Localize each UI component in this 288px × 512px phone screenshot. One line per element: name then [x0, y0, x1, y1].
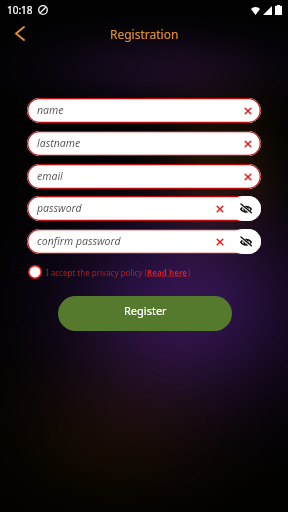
- button[interactable]: name: [27, 98, 261, 123]
- button[interactable]: Toggle password visibility: [230, 196, 261, 221]
- button[interactable]: lastname: [27, 131, 261, 156]
- button[interactable]: confirm password: [27, 229, 261, 254]
- button[interactable]: Clear confirm password: [215, 237, 225, 247]
- button[interactable]: password: [27, 196, 261, 221]
- staticText: password: [37, 201, 82, 215]
- button[interactable]: Clear password: [215, 204, 225, 214]
- staticText: confirm password: [37, 234, 121, 248]
- button[interactable]: Accept privacy policy: [28, 265, 42, 279]
- staticText: email: [37, 169, 63, 183]
- button[interactable]: Toggle password visibility: [230, 229, 261, 254]
- button[interactable]: Read here: [147, 267, 188, 278]
- staticText: I accept the privacy policy (: [46, 267, 147, 278]
- button[interactable]: Clear name: [243, 106, 253, 116]
- staticText: name: [37, 103, 64, 117]
- staticText: 10:18: [7, 3, 33, 17]
- button[interactable]: Back: [4, 18, 35, 49]
- staticText: Registration: [110, 26, 179, 42]
- button[interactable]: Clear lastname: [243, 139, 253, 149]
- button[interactable]: Clear email: [243, 172, 253, 182]
- button[interactable]: email: [27, 164, 261, 189]
- button[interactable]: Register: [58, 296, 232, 331]
- staticText: Register: [124, 303, 167, 318]
- staticText: lastname: [37, 136, 81, 150]
- staticText: ): [188, 267, 191, 278]
